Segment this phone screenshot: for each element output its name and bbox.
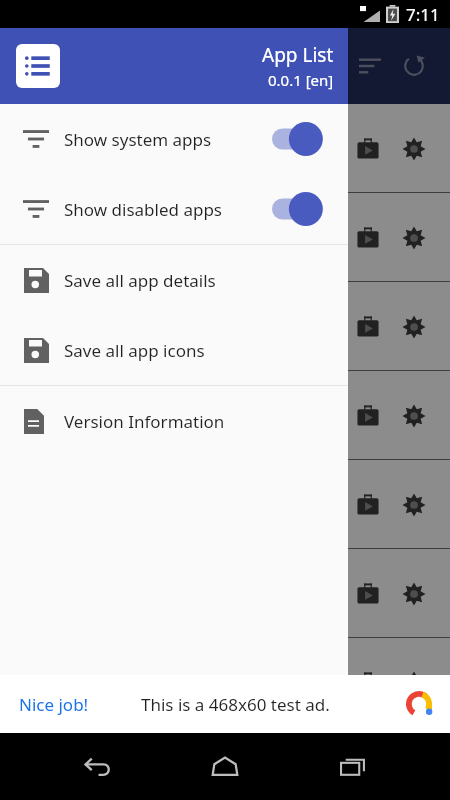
staticText: Show disabled apps	[64, 198, 222, 221]
staticText: This is a 468x60 test ad.	[141, 693, 330, 716]
button[interactable]: Open in store	[348, 307, 388, 347]
button[interactable]: Open in store	[348, 663, 388, 703]
button[interactable]: Open in store	[348, 485, 388, 525]
button[interactable]: App settings	[394, 663, 434, 703]
button[interactable]: App settings	[394, 396, 434, 436]
button[interactable]: Refresh	[392, 44, 436, 88]
button[interactable]: Nice job!	[0, 675, 450, 733]
button[interactable]: Sort	[348, 44, 392, 88]
button[interactable]: Version Information	[0, 386, 348, 456]
staticText: 7:11	[406, 3, 440, 26]
staticText: Version Information	[64, 410, 225, 433]
button[interactable]: Save all app icons	[0, 315, 348, 385]
button[interactable]: App settings	[394, 129, 434, 169]
button[interactable]: App settings	[394, 307, 434, 347]
button[interactable]: App settings	[394, 574, 434, 614]
button[interactable]: Recent apps	[323, 737, 383, 797]
staticText: Save all app details	[64, 269, 216, 292]
button[interactable]: Open in store	[348, 396, 388, 436]
button[interactable]: Home	[195, 737, 255, 797]
button[interactable]: Show system apps	[0, 104, 348, 174]
button[interactable]: App settings	[394, 218, 434, 258]
button[interactable]: Back	[68, 737, 128, 797]
staticText: Save all app icons	[64, 339, 205, 362]
button[interactable]: Save all app details	[0, 245, 348, 315]
staticText: 0.0.1 [en]	[268, 70, 334, 90]
button[interactable]: Open in store	[348, 129, 388, 169]
staticText: App List	[262, 42, 334, 68]
button[interactable]: App settings	[394, 485, 434, 525]
button[interactable]: Open in store	[348, 218, 388, 258]
staticText: Nice job!	[19, 693, 89, 716]
button[interactable]: Show disabled apps	[0, 174, 348, 244]
button[interactable]: App List	[0, 28, 348, 104]
staticText: Show system apps	[64, 128, 212, 151]
button[interactable]: Open in store	[348, 574, 388, 614]
